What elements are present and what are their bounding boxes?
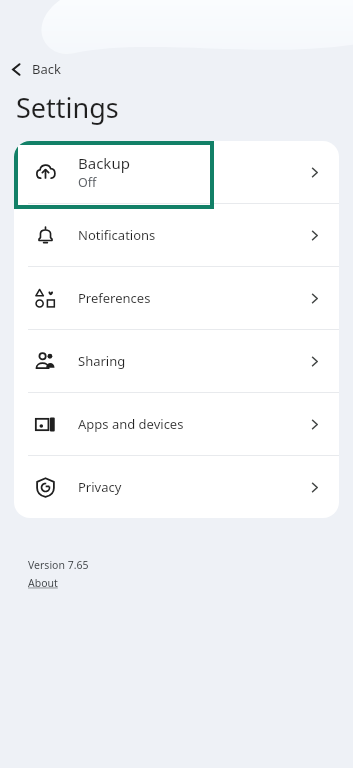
button[interactable]: Notifications bbox=[14, 204, 339, 266]
staticText: Apps and devices bbox=[78, 415, 184, 433]
button[interactable]: Sharing bbox=[14, 330, 339, 392]
staticText: Off bbox=[78, 174, 97, 191]
other: Sharing bbox=[35, 351, 56, 372]
button[interactable]: Privacy bbox=[14, 456, 339, 518]
other: Privacy bbox=[35, 477, 56, 498]
button[interactable]: Back bbox=[4, 57, 66, 81]
staticText: Sharing bbox=[78, 352, 126, 370]
other: Notifications bbox=[35, 225, 56, 246]
button[interactable]: Backup bbox=[14, 141, 339, 203]
staticText: Notifications bbox=[78, 226, 156, 244]
other: Apps and devices bbox=[35, 414, 56, 435]
staticText: Settings bbox=[16, 89, 119, 126]
staticText: Privacy bbox=[78, 478, 122, 496]
button[interactable]: About bbox=[28, 576, 58, 590]
staticText: Backup bbox=[78, 153, 130, 173]
other: Backup bbox=[35, 162, 56, 183]
staticText: Version 7.65 bbox=[28, 558, 89, 572]
staticText: Back bbox=[32, 60, 61, 78]
other: Preferences bbox=[35, 288, 56, 309]
button[interactable]: Preferences bbox=[14, 267, 339, 329]
button[interactable]: Apps and devices bbox=[14, 393, 339, 455]
staticText: Preferences bbox=[78, 289, 151, 307]
